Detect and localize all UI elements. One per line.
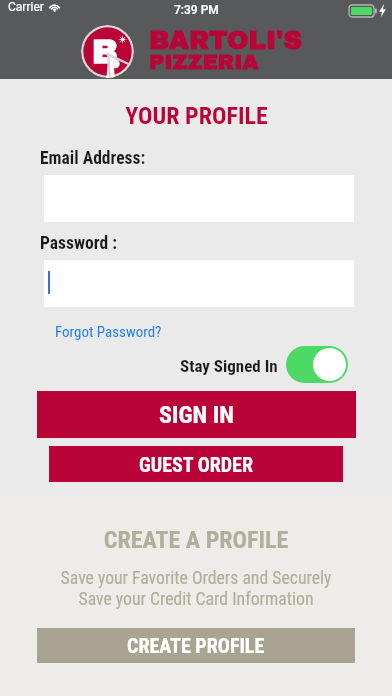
button[interactable]: Stay Signed In toggle [286, 346, 348, 383]
staticText: Password : [40, 233, 117, 254]
staticText: Carrier [8, 0, 44, 14]
staticText: Forgot Password? [55, 323, 162, 341]
button[interactable]: GUEST ORDER [49, 446, 343, 482]
staticText: Stay Signed In [180, 356, 278, 376]
staticText: YOUR PROFILE [125, 102, 267, 130]
staticText: CREATE A PROFILE [102, 526, 290, 554]
staticText: BARTOLI'S [149, 26, 303, 54]
staticText: Save your Favorite Orders and Securely S… [58, 568, 334, 609]
staticText: Email Address: [40, 148, 146, 169]
staticText: CREATE PROFILE [127, 634, 265, 657]
button[interactable]: CREATE PROFILE [37, 628, 355, 663]
staticText: GUEST ORDER [139, 453, 253, 476]
staticText: PIZZERIA [149, 51, 259, 74]
staticText: B [92, 34, 118, 70]
staticText: SIGN IN [159, 401, 234, 429]
staticText: 7:39 PM [174, 3, 219, 17]
button[interactable]: Password field [44, 260, 354, 307]
button[interactable]: Forgot Password? [55, 323, 162, 341]
button[interactable]: SIGN IN [37, 391, 356, 438]
